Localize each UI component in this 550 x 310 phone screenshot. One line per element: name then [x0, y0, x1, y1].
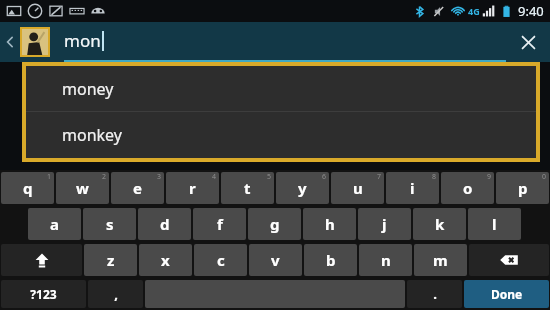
button[interactable]: m — [414, 244, 467, 276]
button[interactable]: z — [84, 244, 137, 276]
staticText: money — [62, 78, 114, 100]
button[interactable]: n — [359, 244, 412, 276]
staticText: p — [518, 178, 528, 198]
staticText: f — [217, 214, 223, 234]
button[interactable]: monkey — [26, 112, 536, 157]
button[interactable]: p — [496, 172, 549, 204]
staticText: 4 — [212, 172, 217, 182]
staticText: n — [381, 250, 391, 270]
staticText: a — [50, 214, 59, 234]
staticText: b — [326, 250, 336, 270]
staticText: 7 — [377, 172, 382, 182]
staticText: w — [76, 178, 89, 198]
button[interactable]: Backspace — [469, 244, 549, 276]
staticText: u — [353, 178, 363, 198]
button[interactable]: b — [304, 244, 357, 276]
staticText: o — [463, 178, 473, 198]
staticText: monkey — [62, 124, 122, 146]
button[interactable]: i — [386, 172, 439, 204]
button[interactable]: , — [88, 280, 143, 308]
staticText: 1 — [47, 172, 52, 182]
staticText: 5 — [267, 172, 272, 182]
staticText: l — [492, 214, 497, 234]
button[interactable]: w — [56, 172, 109, 204]
staticText: r — [189, 178, 196, 198]
button[interactable]: d — [138, 208, 191, 240]
button[interactable]: f — [193, 208, 246, 240]
button[interactable]: mon — [64, 22, 506, 62]
staticText: c — [217, 250, 225, 270]
staticText: i — [410, 178, 415, 198]
staticText: ?123 — [30, 286, 57, 302]
staticText: 9:40 — [518, 2, 544, 20]
button[interactable]: . — [407, 280, 462, 308]
button[interactable]: e — [111, 172, 164, 204]
staticText: , — [114, 285, 118, 303]
staticText: s — [106, 214, 114, 234]
staticText: mon — [64, 29, 101, 52]
staticText: k — [435, 214, 445, 234]
button[interactable]: x — [139, 244, 192, 276]
button[interactable]: v — [249, 244, 302, 276]
staticText: e — [133, 178, 142, 198]
staticText: g — [270, 214, 280, 234]
button[interactable]: a — [28, 208, 81, 240]
staticText: 4G — [468, 5, 480, 17]
button[interactable]: u — [331, 172, 384, 204]
button[interactable]: c — [194, 244, 247, 276]
button[interactable]: k — [413, 208, 466, 240]
button[interactable]: r — [166, 172, 219, 204]
button[interactable]: Back — [0, 22, 20, 62]
staticText: 2 — [102, 172, 107, 182]
button[interactable]: j — [358, 208, 411, 240]
staticText: y — [298, 178, 307, 198]
staticText: x — [161, 250, 170, 270]
staticText: 8 — [432, 172, 437, 182]
button[interactable]: App icon — [22, 29, 48, 55]
button[interactable]: o — [441, 172, 494, 204]
staticText: d — [160, 214, 170, 234]
button[interactable]: Done — [464, 280, 549, 308]
button[interactable]: y — [276, 172, 329, 204]
staticText: 9 — [487, 172, 492, 182]
button[interactable]: h — [303, 208, 356, 240]
button[interactable]: q — [1, 172, 54, 204]
staticText: j — [382, 214, 387, 234]
button[interactable]: t — [221, 172, 274, 204]
staticText: 6 — [322, 172, 327, 182]
staticText: h — [325, 214, 335, 234]
staticText: m — [433, 250, 448, 270]
staticText: . — [433, 285, 437, 303]
staticText: Done — [491, 286, 523, 302]
button[interactable]: l — [468, 208, 521, 240]
button[interactable]: s — [83, 208, 136, 240]
staticText: q — [23, 178, 33, 198]
staticText: 0 — [542, 172, 547, 182]
staticText: z — [107, 250, 115, 270]
staticText: v — [271, 250, 280, 270]
staticText: t — [244, 178, 251, 198]
button[interactable]: ?123 — [1, 280, 86, 308]
button[interactable]: Clear search — [506, 22, 550, 62]
button[interactable]: money — [26, 66, 536, 111]
staticText: 3 — [157, 172, 162, 182]
button[interactable]: g — [248, 208, 301, 240]
button[interactable]: Shift — [1, 244, 82, 276]
